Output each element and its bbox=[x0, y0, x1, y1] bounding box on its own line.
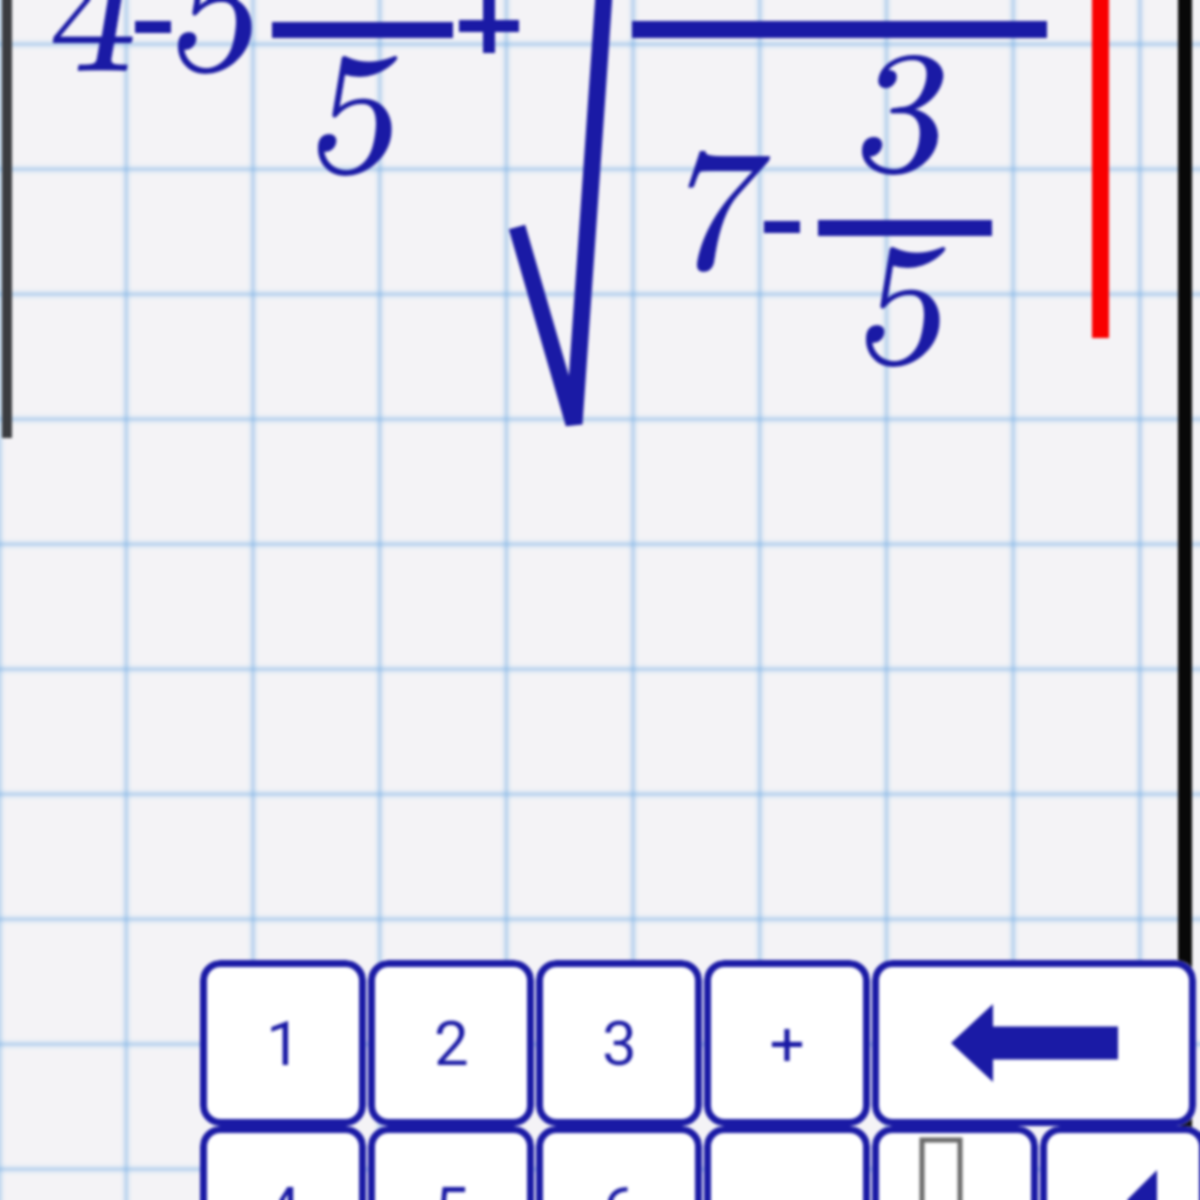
staticText: 3 bbox=[602, 1007, 637, 1080]
staticText: 4 bbox=[43, 0, 132, 120]
staticText: 5 bbox=[166, 0, 255, 119]
button[interactable]: Backspace bbox=[872, 960, 1196, 1126]
staticText: 5 bbox=[165, 0, 254, 120]
staticText: 5 bbox=[434, 1173, 469, 1200]
staticText: 5 bbox=[165, 0, 254, 119]
staticText: 5 bbox=[853, 168, 942, 412]
staticText: 2 bbox=[434, 1007, 469, 1080]
staticText: 5 bbox=[305, 0, 394, 222]
staticText: 3 bbox=[852, 0, 941, 220]
staticText: 5 bbox=[305, 0, 394, 221]
button[interactable]: plus bbox=[704, 960, 870, 1126]
button[interactable]: 3 bbox=[536, 960, 702, 1126]
button[interactable]: 1 bbox=[200, 960, 366, 1126]
button[interactable]: 5 bbox=[368, 1126, 534, 1200]
button[interactable]: minus bbox=[704, 1126, 870, 1200]
staticText: 4 bbox=[266, 1173, 301, 1200]
staticText: 5 bbox=[306, 0, 395, 221]
staticText: 4 bbox=[43, 0, 132, 121]
button[interactable]: 6 bbox=[536, 1126, 702, 1200]
staticText: 5 bbox=[854, 168, 943, 412]
button[interactable]: 4 bbox=[200, 1126, 366, 1200]
staticText: 1 bbox=[266, 1007, 301, 1080]
staticText: 5 bbox=[853, 169, 942, 413]
button[interactable]: Enter bbox=[1040, 1126, 1200, 1200]
button[interactable]: placeholder box bbox=[872, 1126, 1038, 1200]
staticText: 3 bbox=[851, 0, 940, 220]
staticText: 4 bbox=[44, 0, 133, 120]
staticText: 3 bbox=[851, 0, 940, 221]
staticText: + bbox=[769, 1007, 805, 1080]
staticText: 7 bbox=[665, 74, 754, 318]
button[interactable]: 2 bbox=[368, 960, 534, 1126]
staticText: 7 bbox=[666, 73, 755, 317]
staticText: 6 bbox=[602, 1173, 637, 1200]
staticText: 7 bbox=[665, 73, 754, 317]
